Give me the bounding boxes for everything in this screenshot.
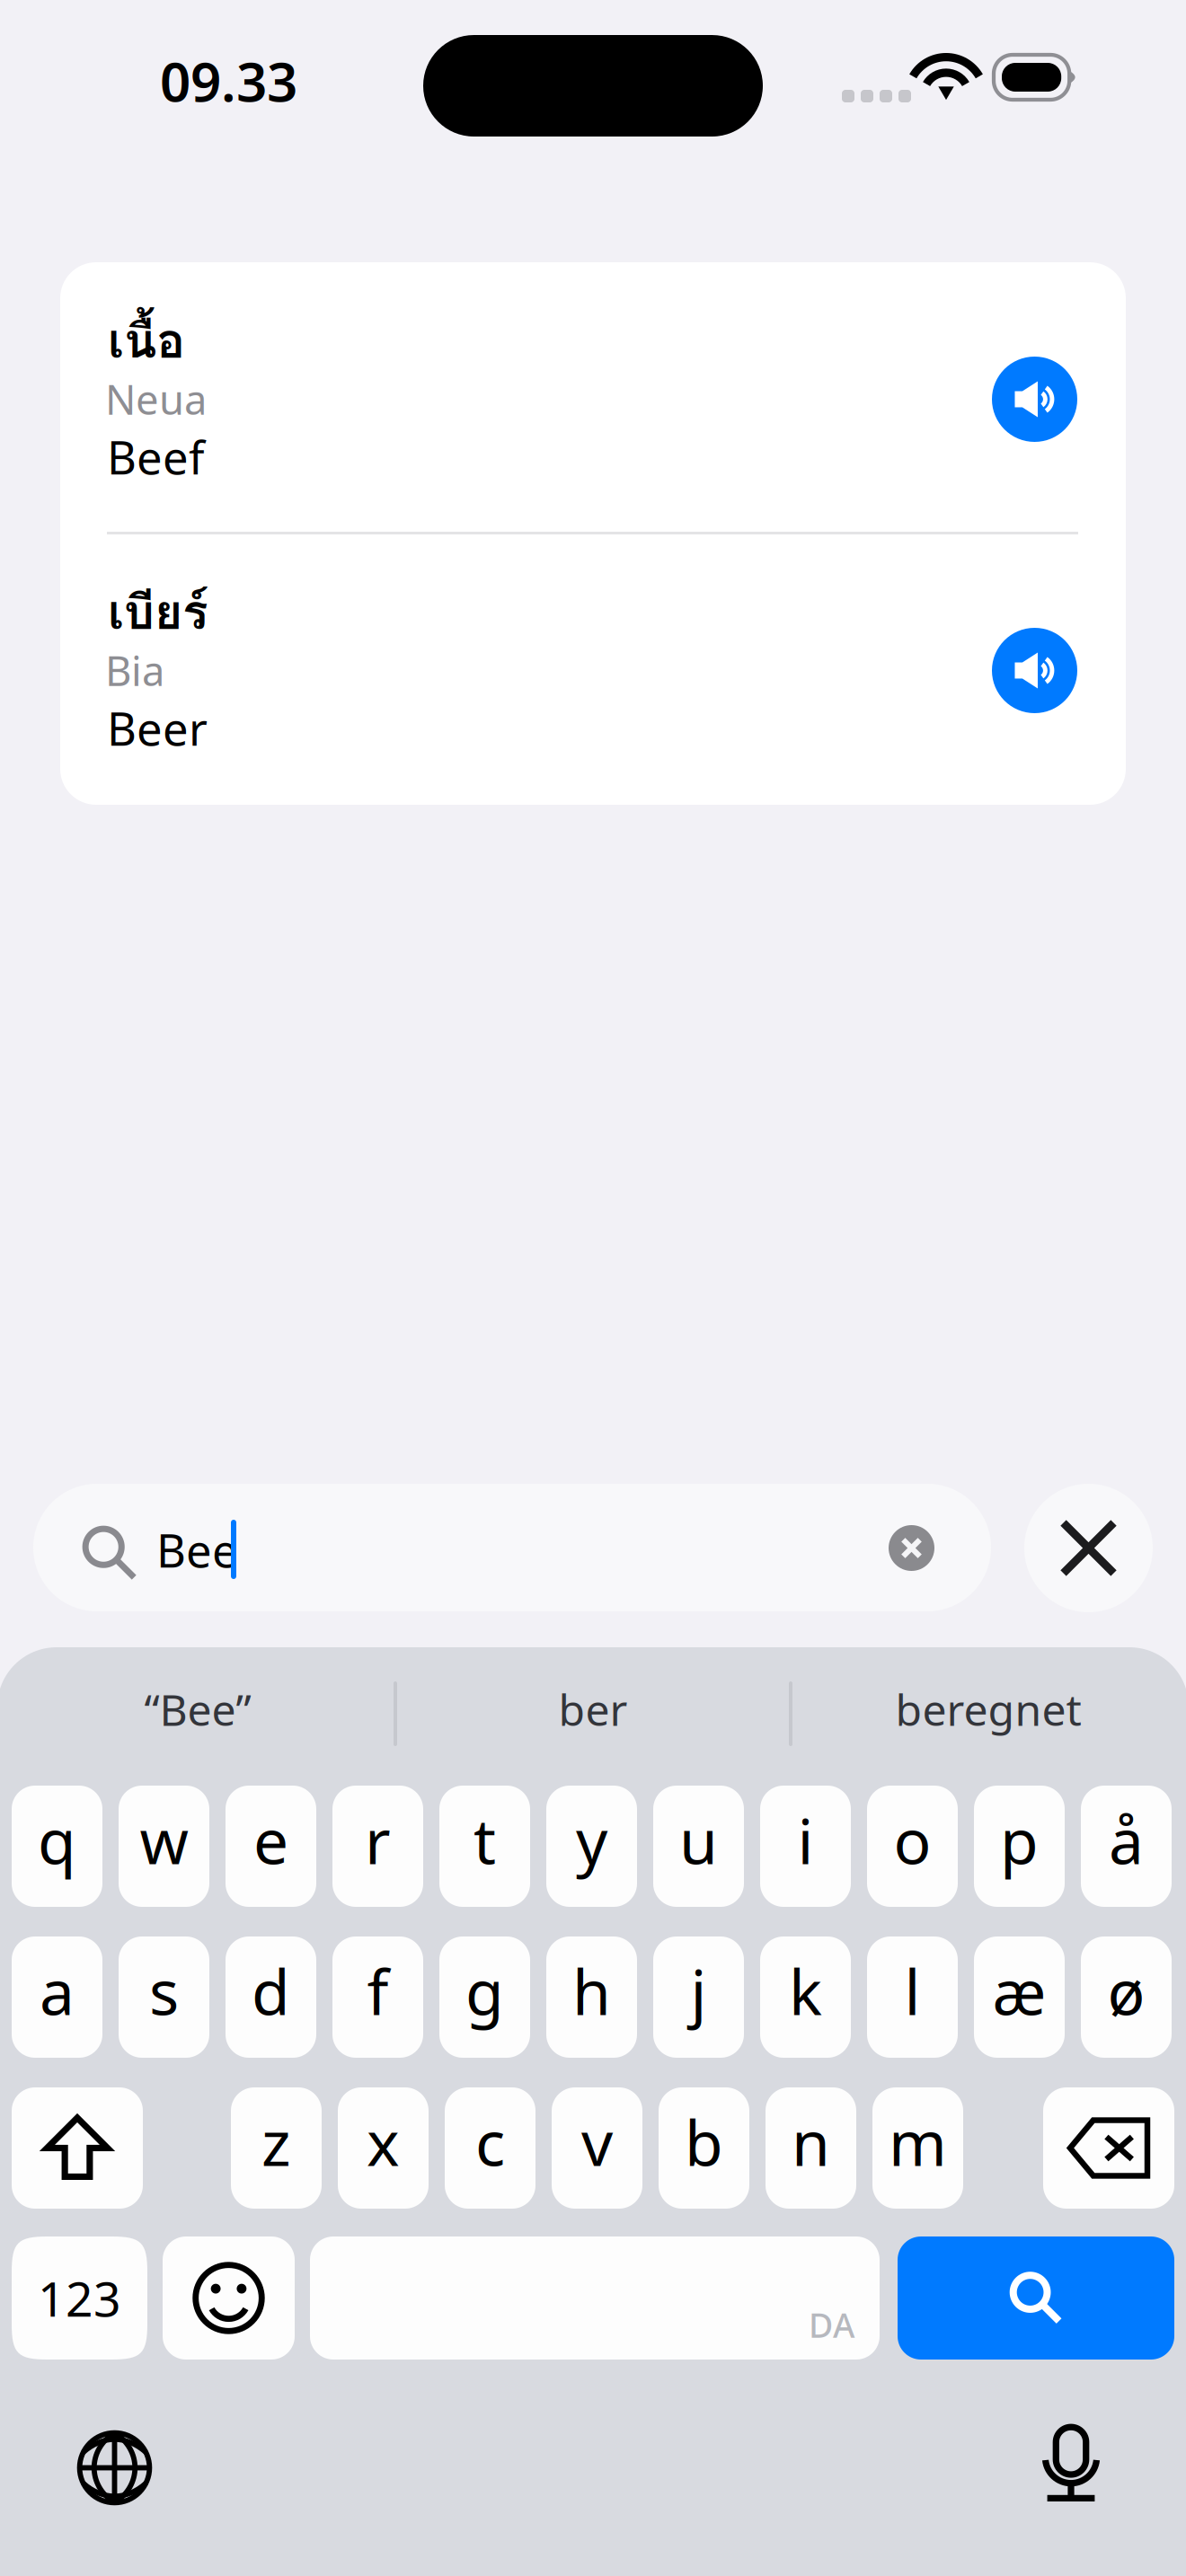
staticText: เบียร์ bbox=[108, 575, 208, 649]
button[interactable]: u bbox=[653, 1786, 744, 1907]
button[interactable]: e bbox=[226, 1786, 316, 1907]
button[interactable]: 123 bbox=[12, 2236, 147, 2360]
button[interactable]: t bbox=[439, 1786, 530, 1907]
button[interactable]: o bbox=[867, 1786, 958, 1907]
button[interactable]: b bbox=[659, 2087, 749, 2209]
button[interactable]: “Bee” bbox=[0, 1647, 395, 1771]
button[interactable]: Space bbox=[310, 2236, 880, 2360]
button[interactable]: q bbox=[12, 1786, 102, 1907]
staticText: k bbox=[789, 1950, 822, 2032]
staticText: æ bbox=[992, 1950, 1046, 2032]
staticText: Bee bbox=[156, 1520, 238, 1580]
button[interactable]: w bbox=[119, 1786, 209, 1907]
button[interactable]: y bbox=[546, 1786, 637, 1907]
staticText: o bbox=[894, 1799, 931, 1881]
button[interactable]: l bbox=[867, 1936, 958, 2058]
staticText: j bbox=[690, 1950, 707, 2032]
button[interactable]: f bbox=[332, 1936, 423, 2058]
staticText: t bbox=[474, 1799, 496, 1881]
button[interactable]: Shift bbox=[12, 2087, 143, 2209]
staticText: r bbox=[365, 1799, 391, 1881]
staticText: q bbox=[38, 1799, 76, 1881]
staticText: n bbox=[792, 2100, 830, 2183]
staticText: m bbox=[889, 2100, 947, 2183]
staticText: å bbox=[1109, 1799, 1144, 1881]
button[interactable]: Search bbox=[898, 2236, 1174, 2360]
staticText: Beef bbox=[107, 427, 204, 487]
button[interactable]: Play pronunciation of Beer bbox=[992, 628, 1077, 713]
button[interactable]: k bbox=[760, 1936, 851, 2058]
button[interactable]: beregnet bbox=[791, 1647, 1186, 1771]
staticText: เนื้อ bbox=[108, 304, 185, 378]
button[interactable]: z bbox=[231, 2087, 322, 2209]
staticText: g bbox=[465, 1950, 504, 2032]
staticText: d bbox=[252, 1950, 290, 2032]
button[interactable]: m bbox=[872, 2087, 963, 2209]
staticText: y bbox=[576, 1799, 607, 1881]
button[interactable]: s bbox=[119, 1936, 209, 2058]
staticText: b bbox=[685, 2100, 723, 2183]
button[interactable]: p bbox=[974, 1786, 1065, 1907]
button[interactable]: ber bbox=[395, 1647, 791, 1771]
button[interactable]: Play pronunciation of Beef bbox=[992, 357, 1077, 442]
staticText: v bbox=[581, 2100, 613, 2183]
button[interactable]: เนื้อ bbox=[60, 262, 1126, 534]
button[interactable]: j bbox=[653, 1936, 744, 2058]
button[interactable]: Bee bbox=[33, 1484, 991, 1611]
staticText: i bbox=[797, 1799, 814, 1881]
staticText: h bbox=[572, 1950, 611, 2032]
button[interactable]: เบียร์ bbox=[60, 534, 1126, 805]
staticText: s bbox=[149, 1950, 179, 2032]
button[interactable]: Delete bbox=[1043, 2087, 1174, 2209]
button[interactable]: ø bbox=[1081, 1936, 1172, 2058]
staticText: z bbox=[261, 2100, 291, 2183]
staticText: f bbox=[367, 1950, 389, 2032]
button[interactable]: Dictate bbox=[1031, 2425, 1111, 2504]
button[interactable]: Next keyboard bbox=[78, 2431, 151, 2504]
staticText: Bia bbox=[105, 643, 164, 697]
button[interactable]: d bbox=[226, 1936, 316, 2058]
staticText: a bbox=[40, 1950, 75, 2032]
staticText: 123 bbox=[38, 2266, 121, 2330]
staticText: u bbox=[679, 1799, 718, 1881]
staticText: DA bbox=[809, 2302, 854, 2347]
staticText: ø bbox=[1107, 1950, 1145, 2032]
staticText: Neua bbox=[105, 372, 207, 426]
button[interactable]: i bbox=[760, 1786, 851, 1907]
button[interactable]: v bbox=[552, 2087, 642, 2209]
button[interactable]: Emoji bbox=[163, 2236, 295, 2360]
button[interactable]: g bbox=[439, 1936, 530, 2058]
button[interactable]: c bbox=[445, 2087, 535, 2209]
staticText: 09.33 bbox=[160, 45, 297, 117]
staticText: “Bee” bbox=[144, 1681, 251, 1738]
staticText: e bbox=[253, 1799, 288, 1881]
button[interactable]: h bbox=[546, 1936, 637, 2058]
button[interactable]: a bbox=[12, 1936, 102, 2058]
staticText: c bbox=[475, 2100, 505, 2183]
staticText: beregnet bbox=[895, 1681, 1081, 1738]
staticText: w bbox=[140, 1799, 188, 1881]
button[interactable]: æ bbox=[974, 1936, 1065, 2058]
staticText: Beer bbox=[107, 698, 208, 758]
staticText: ber bbox=[558, 1681, 628, 1738]
button[interactable]: Close search bbox=[1024, 1484, 1153, 1612]
button[interactable]: å bbox=[1081, 1786, 1172, 1907]
button[interactable]: r bbox=[332, 1786, 423, 1907]
button[interactable]: n bbox=[766, 2087, 856, 2209]
staticText: p bbox=[1000, 1799, 1039, 1881]
button[interactable]: x bbox=[338, 2087, 429, 2209]
staticText: l bbox=[904, 1950, 920, 2032]
staticText: x bbox=[367, 2100, 400, 2183]
